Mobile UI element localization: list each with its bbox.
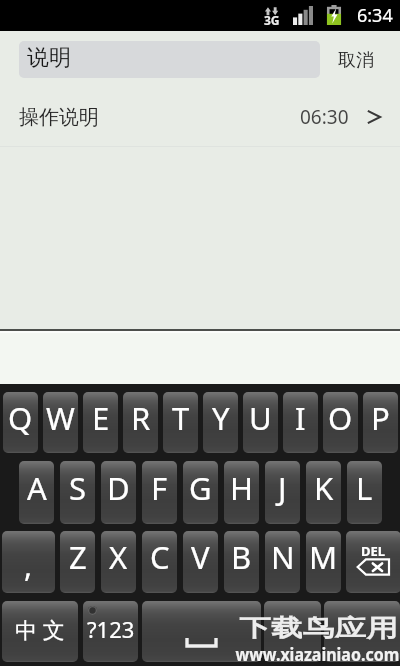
button[interactable]: J [265,461,300,524]
button[interactable]: A [19,461,54,524]
button[interactable]: M [306,531,341,593]
staticText: 取消 [338,49,374,72]
button[interactable]: 说明 [19,41,320,78]
staticText: Z [69,536,87,578]
button[interactable]: Space [142,601,261,662]
staticText: 3G [264,12,280,28]
staticText: 06:30 [300,104,349,130]
button[interactable]: E [83,392,118,453]
button[interactable]: U [243,392,278,453]
staticText: I [295,397,306,439]
button[interactable]: F [142,461,177,524]
staticText: 操作说明 [19,105,99,130]
button[interactable]: , [2,531,55,593]
staticText: M [309,536,338,578]
button[interactable]: S [60,461,95,524]
button[interactable]: C [142,531,177,593]
staticText: G [189,467,212,509]
staticText: J [278,467,287,509]
staticText: K [314,467,334,509]
staticText: N [271,536,295,578]
staticText: E [92,397,110,439]
staticText: ?123 [87,614,135,644]
button[interactable]: G [183,461,218,524]
staticText: D [107,467,130,509]
staticText: S [69,467,87,509]
button[interactable]: B [224,531,259,593]
button[interactable]: N [265,531,300,593]
button[interactable]: Y [203,392,238,453]
button[interactable]: X [101,531,136,593]
button[interactable]: W [43,392,78,453]
button[interactable]: O [323,392,358,453]
staticText: , [24,545,33,586]
staticText: DEL [361,542,386,560]
button[interactable]: K [306,461,341,524]
staticText: P [371,397,390,439]
button[interactable]: R [123,392,158,453]
staticText: C [150,536,170,578]
button[interactable]: Enter [324,601,400,662]
staticText: B [231,536,252,578]
button[interactable]: I [283,392,318,453]
button[interactable]: P [363,392,398,453]
staticText: X [109,536,128,578]
staticText: 下载鸟应用 [239,614,398,643]
button[interactable]: Period [264,601,321,662]
staticText: V [191,536,210,578]
button[interactable]: 中 文 [2,601,78,662]
button[interactable]: D [101,461,136,524]
button[interactable]: V [183,531,218,593]
staticText: Q [8,397,33,439]
button[interactable]: 操作说明 [0,88,400,146]
button[interactable]: Delete [346,531,400,593]
staticText: W [46,397,75,439]
button[interactable]: 取消 [312,38,400,82]
staticText: 说明 [27,44,71,72]
staticText: L [356,467,373,509]
staticText: H [230,467,253,509]
staticText: O [328,397,353,439]
staticText: U [249,397,272,439]
staticText: A [27,467,47,509]
staticText: F [151,467,168,509]
staticText: 6:34 [357,3,393,28]
staticText: 中 文 [15,614,65,644]
staticText: Y [212,397,230,439]
button[interactable]: Z [60,531,95,593]
button[interactable]: ?123 [83,601,138,662]
staticText: www.xiazainiao.com [235,641,400,666]
staticText: T [172,397,190,439]
button[interactable]: Q [3,392,38,453]
button[interactable]: T [163,392,198,453]
button[interactable]: L [347,461,382,524]
button[interactable]: H [224,461,259,524]
staticText: R [131,397,151,439]
